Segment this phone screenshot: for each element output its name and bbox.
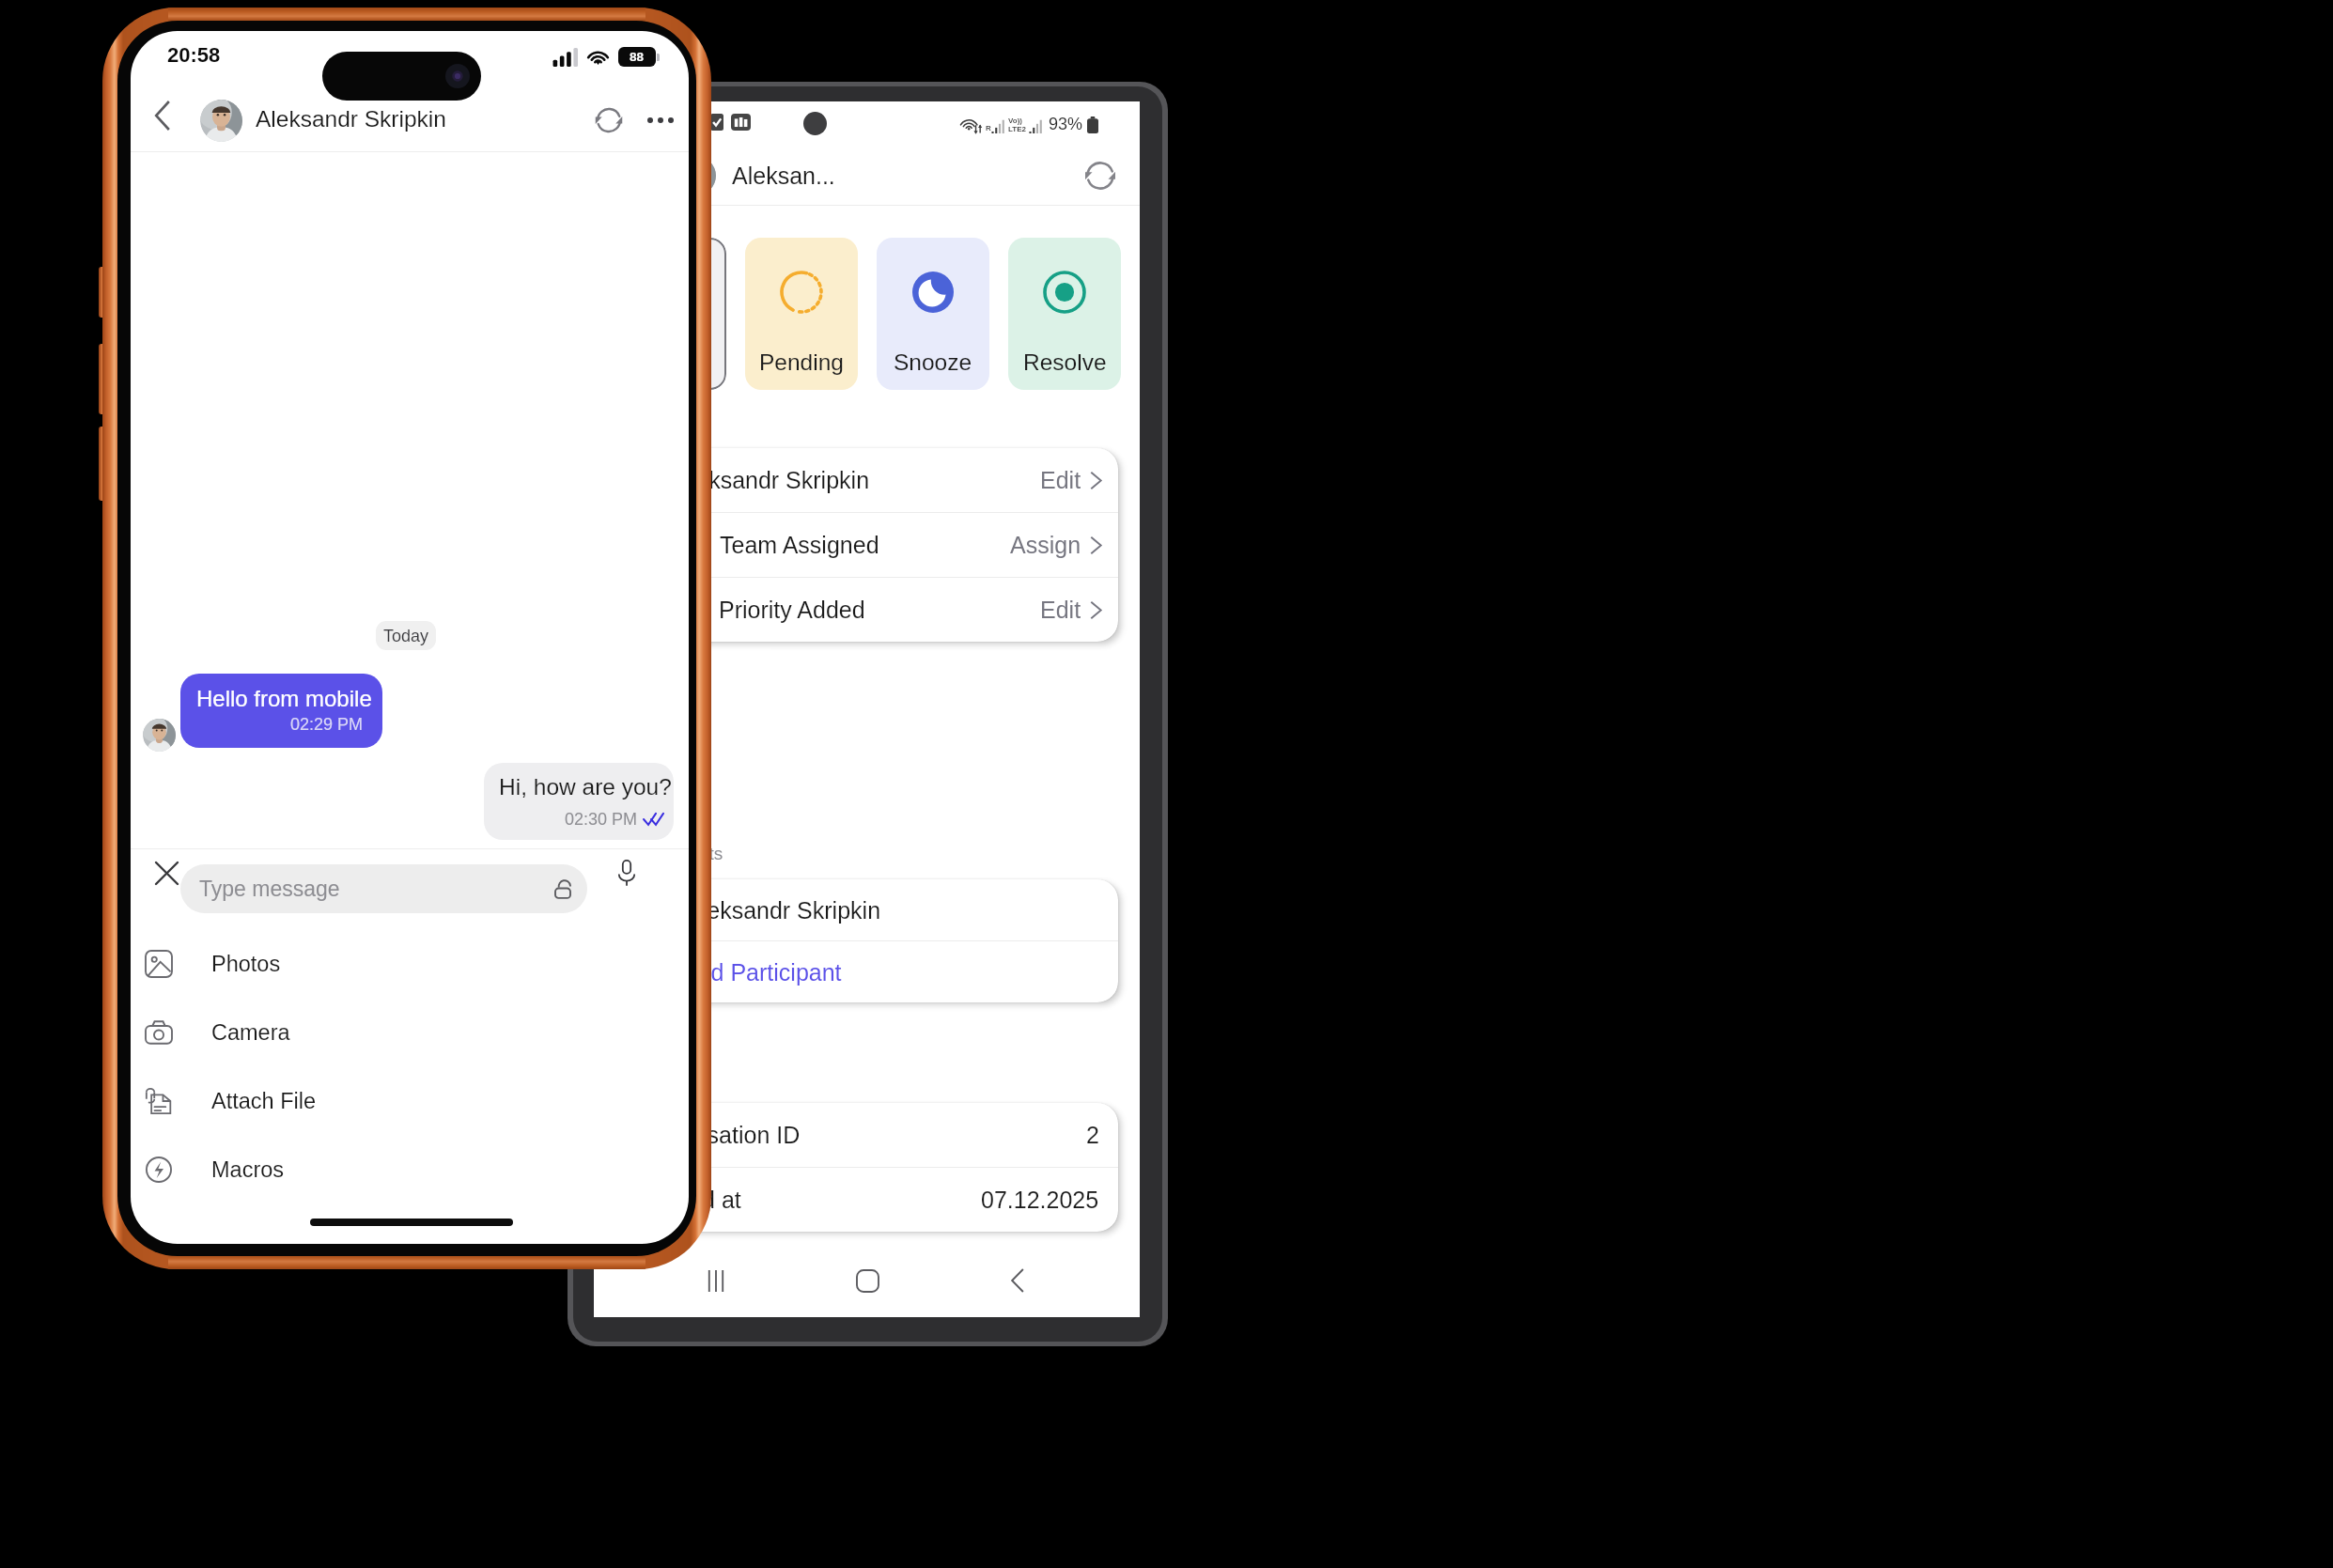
- button[interactable]: Type message: [180, 864, 587, 913]
- button[interactable]: Resolve: [1008, 238, 1121, 390]
- staticText: Hi, how are you?: [499, 774, 672, 800]
- staticText: Edit: [1040, 467, 1081, 493]
- button[interactable]: Macros: [131, 1141, 689, 1198]
- staticText: Macros: [211, 1157, 285, 1182]
- button[interactable]: Aleksan...: [594, 150, 1140, 201]
- button[interactable]: Conversation ID: [615, 1103, 1118, 1167]
- staticText: Pending: [759, 349, 844, 375]
- staticText: Add Participant: [682, 959, 842, 986]
- button[interactable]: Created at: [615, 1168, 1118, 1232]
- button[interactable]: Voice message: [594, 840, 660, 906]
- staticText: Team Assigned: [720, 532, 879, 558]
- staticText: Edit: [1040, 597, 1081, 623]
- staticText: Aleksandr Skripkin: [256, 106, 446, 132]
- button[interactable]: Home: [839, 1252, 895, 1309]
- button[interactable]: Priority Added: [615, 578, 1118, 642]
- staticText: Aleksandr Skripkin: [675, 467, 870, 493]
- button[interactable]: Refresh: [583, 94, 635, 147]
- button[interactable]: Pending: [745, 238, 858, 390]
- staticText: 88: [630, 50, 645, 64]
- staticText: Snooze: [894, 349, 972, 375]
- button[interactable]: Photos: [131, 936, 689, 992]
- button[interactable]: Aleksandr Skripkin: [615, 448, 1118, 512]
- button[interactable]: Add Participant: [615, 941, 1118, 1002]
- staticText: Conversation ID: [631, 1122, 801, 1148]
- button[interactable]: Close: [133, 840, 199, 906]
- button[interactable]: Aleksandr Skripkin: [615, 879, 1118, 940]
- button[interactable]: Team Assigned: [615, 513, 1118, 577]
- button[interactable]: Refresh: [1074, 150, 1127, 201]
- staticText: 2: [1086, 1122, 1099, 1148]
- staticText: 02:30 PM: [565, 810, 638, 829]
- staticText: Today: [383, 627, 429, 645]
- staticText: 93%: [1049, 115, 1083, 133]
- button[interactable]: More options: [634, 94, 687, 147]
- staticText: Vo)): [1008, 116, 1022, 125]
- button[interactable]: Open: [614, 238, 726, 390]
- staticText: Open: [642, 349, 698, 375]
- staticText: Attach File: [211, 1089, 317, 1113]
- staticText: Type message: [199, 877, 340, 901]
- button[interactable]: Back: [989, 1252, 1046, 1309]
- staticText: Hello from mobile: [196, 686, 372, 711]
- staticText: Resolve: [1023, 349, 1107, 375]
- staticText: 02:29 PM: [290, 715, 364, 734]
- button[interactable]: Hi, how are you?: [484, 763, 674, 840]
- staticText: Assign: [1010, 532, 1081, 558]
- staticText: 07.12.2025: [981, 1187, 1099, 1213]
- staticText: Photos: [211, 952, 281, 976]
- staticText: Participants: [630, 844, 723, 863]
- staticText: Aleksandr Skripkin: [686, 897, 881, 924]
- button[interactable]: Camera: [131, 1004, 689, 1061]
- button[interactable]: Recents: [688, 1252, 744, 1309]
- button[interactable]: Back: [136, 89, 189, 142]
- staticText: LTE2: [1008, 125, 1026, 133]
- button[interactable]: Snooze: [877, 238, 989, 390]
- staticText: Aleksan...: [732, 163, 835, 189]
- staticText: R: [986, 124, 991, 132]
- staticText: 20:58: [167, 43, 221, 67]
- staticText: Priority Added: [719, 597, 865, 623]
- staticText: Created at: [631, 1187, 741, 1213]
- staticText: Camera: [211, 1020, 290, 1045]
- button[interactable]: Attach File: [131, 1073, 689, 1129]
- button[interactable]: Hello from mobile: [180, 674, 382, 748]
